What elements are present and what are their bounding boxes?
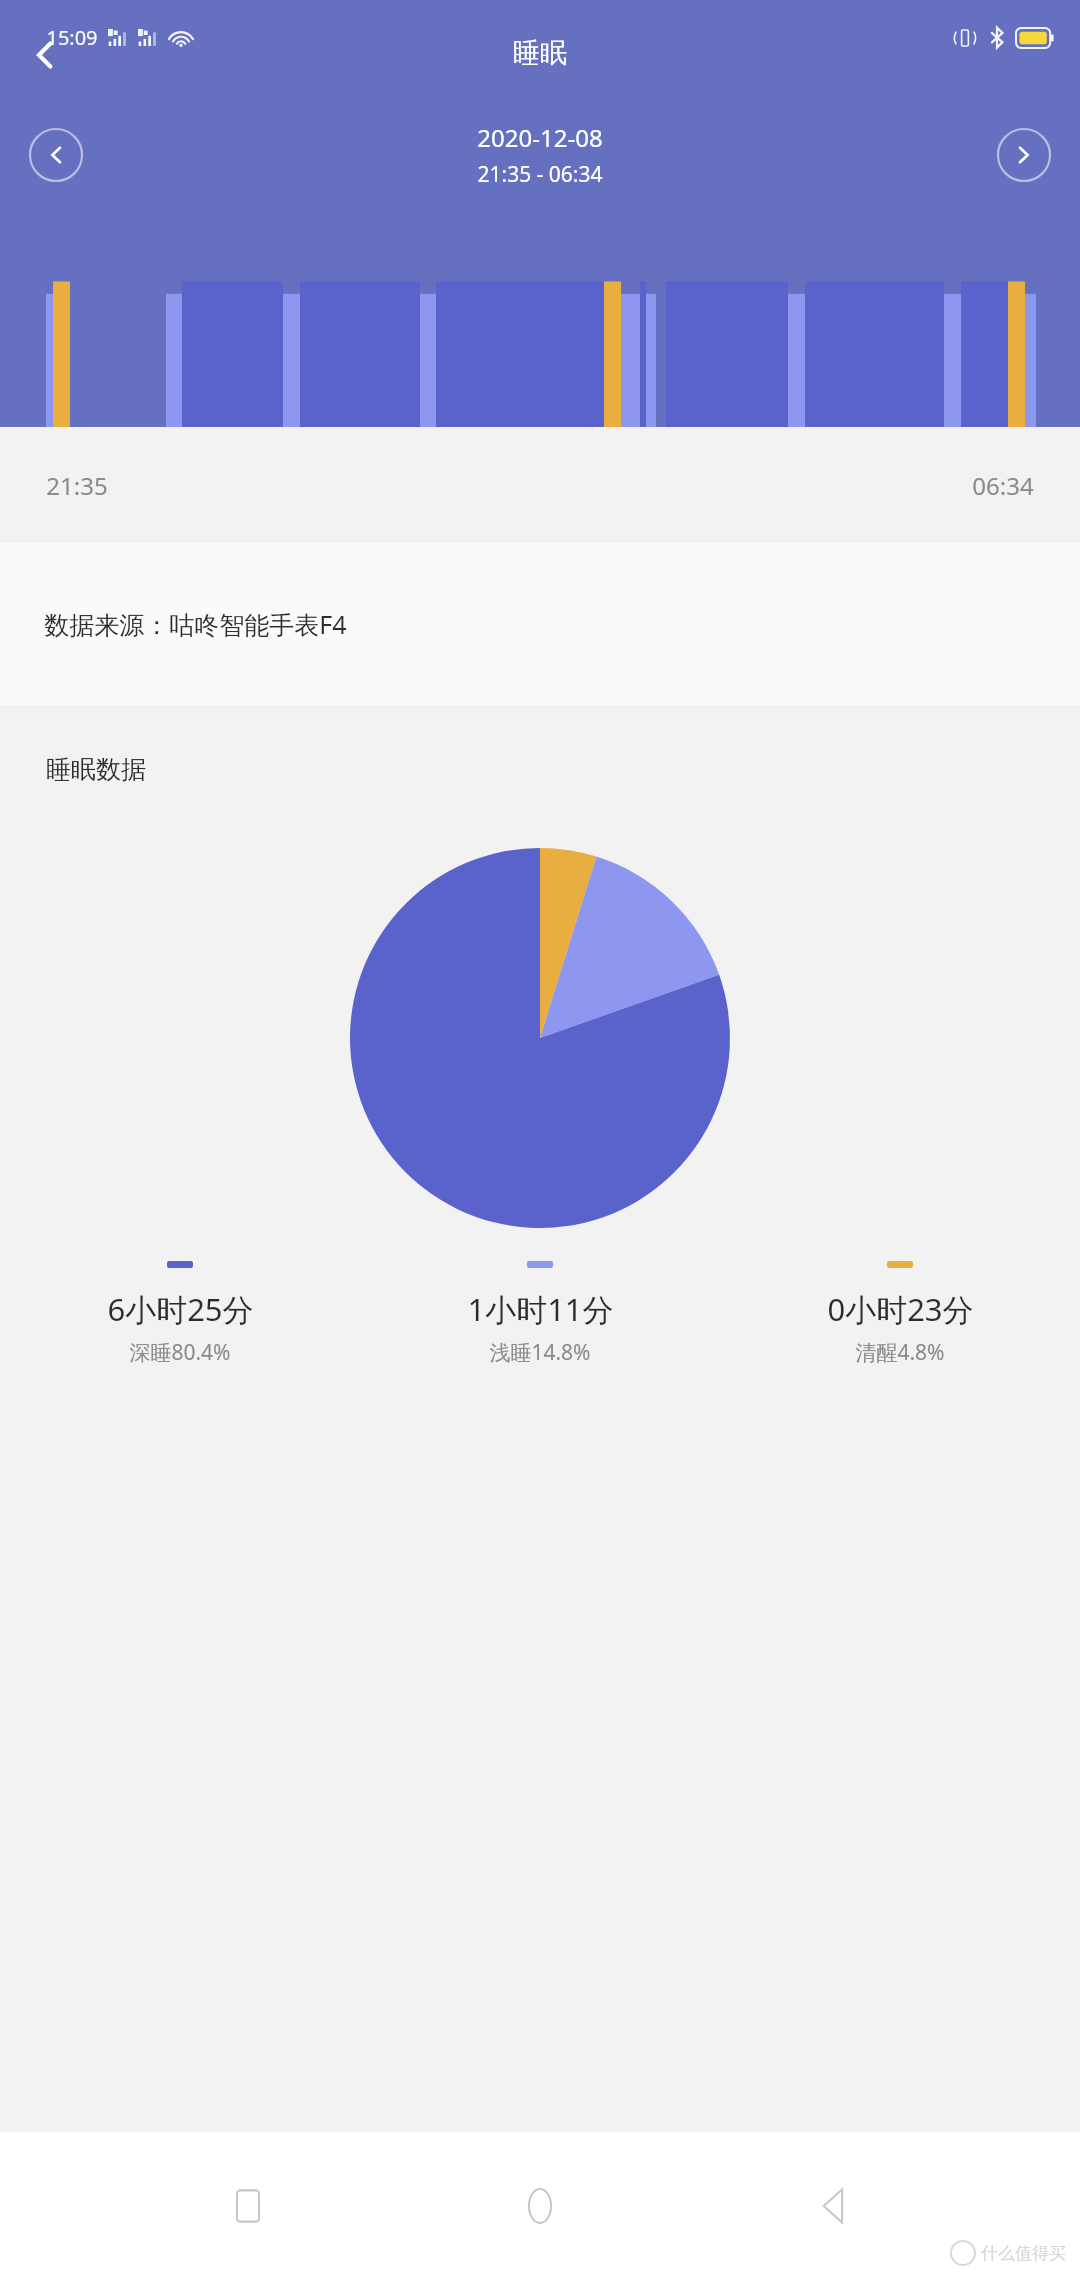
- staticText: 6小时25分: [107, 1288, 254, 1330]
- staticText: 15:09: [46, 24, 98, 51]
- staticText: 2020-12-08: [477, 121, 603, 154]
- button[interactable]: 数据来源：咕咚智能手表F4: [0, 543, 1080, 705]
- button[interactable]: Back: [14, 24, 76, 86]
- button[interactable]: 1小时11分: [360, 1261, 720, 1367]
- staticText: 什么值得买: [981, 2243, 1066, 2264]
- staticText: 数据来源：咕咚智能手表F4: [44, 607, 347, 641]
- staticText: 睡眠数据: [46, 754, 146, 785]
- staticText: 21:35 - 06:34: [477, 160, 603, 189]
- button[interactable]: Back: [784, 2158, 880, 2254]
- staticText: 浅睡14.8%: [489, 1338, 591, 1367]
- button[interactable]: Previous day: [28, 127, 84, 183]
- staticText: 睡眠: [513, 36, 567, 70]
- staticText: 清醒4.8%: [855, 1338, 945, 1367]
- staticText: 06:34: [972, 469, 1034, 502]
- staticText: 21:35: [46, 469, 108, 502]
- button[interactable]: 0小时23分: [720, 1261, 1080, 1367]
- staticText: 1小时11分: [467, 1288, 614, 1330]
- button[interactable]: Home: [492, 2158, 588, 2254]
- button[interactable]: Next day: [996, 127, 1052, 183]
- button[interactable]: 6小时25分: [0, 1261, 360, 1367]
- staticText: 深睡80.4%: [129, 1338, 231, 1367]
- staticText: 0小时23分: [827, 1288, 974, 1330]
- button[interactable]: Recents: [200, 2158, 296, 2254]
